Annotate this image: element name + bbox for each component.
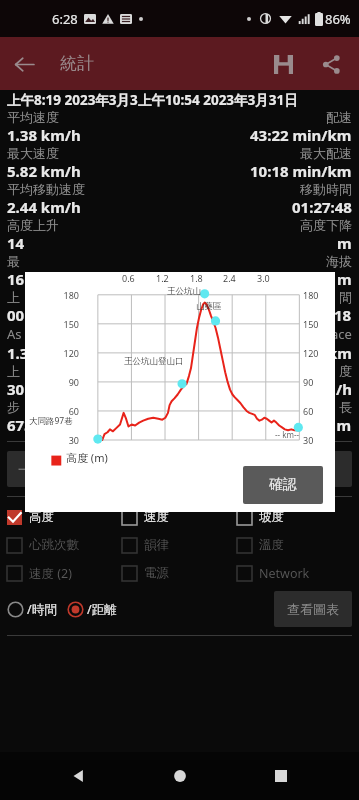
staticText: 間 [339, 289, 352, 305]
button[interactable]: Back [54, 752, 102, 800]
button[interactable]: 速度 (2) [7, 559, 122, 587]
button[interactable]: 查看圖表 [274, 591, 352, 627]
staticText: 步 [7, 399, 20, 415]
button[interactable]: /時間 [7, 594, 57, 624]
staticText: 2.44 km/h [7, 197, 81, 217]
staticText: 心跳次數 [29, 537, 79, 553]
staticText: 6:28 [52, 10, 78, 28]
staticText: 3.0 [257, 272, 270, 284]
staticText: 60 [303, 405, 314, 417]
staticText: 最大速度 [7, 145, 59, 161]
staticText: 43:22 min/km [250, 125, 352, 145]
staticText: 高度上升 [7, 217, 59, 233]
staticText: 電源 [144, 565, 169, 581]
staticText: 速度 (2) [29, 565, 72, 582]
button[interactable]: 電源 [122, 559, 237, 587]
staticText: 00 [7, 305, 25, 325]
staticText: 5.82 km/h [7, 161, 81, 181]
staticText: ace [331, 325, 352, 343]
staticText: 王公坑山 [167, 286, 201, 297]
staticText: 坡度 [259, 509, 284, 525]
staticText: 10:18 min/km [250, 161, 352, 181]
staticText: 韻律 [144, 537, 169, 553]
staticText: 30 [7, 379, 25, 399]
staticText: 移動時間 [300, 181, 352, 197]
button[interactable]: 坡度 [237, 503, 352, 531]
staticText: 最大配速 [300, 145, 352, 161]
staticText: 度 [339, 363, 352, 379]
button[interactable]: 速度 [122, 503, 237, 531]
staticText: 配速 [326, 109, 352, 125]
staticText: 90 [39, 376, 79, 388]
staticText: -- km-- [275, 429, 300, 440]
staticText: 查看圖表 [287, 601, 339, 617]
staticText: 150 [303, 318, 319, 330]
staticText: 1.38 km/h [7, 125, 81, 145]
staticText: 統計 [60, 53, 94, 74]
staticText: 1.2 [156, 272, 169, 284]
staticText: 平均速度 [7, 109, 59, 125]
staticText: 上午10:54 2023年3月31日 [138, 91, 298, 109]
button[interactable]: 確認 [243, 466, 323, 504]
button[interactable]: 心跳次數 [7, 531, 122, 559]
staticText: 確認 [269, 476, 297, 494]
staticText: 最 [7, 253, 20, 269]
staticText: 90 [303, 376, 314, 388]
staticText: 一圈的距離 (1.00 KM) [18, 460, 147, 478]
staticText: 60 [39, 405, 79, 417]
button[interactable]: 詳細 [270, 451, 352, 487]
staticText: 山藥區 [196, 301, 222, 312]
staticText: 0.6 [122, 272, 135, 284]
button[interactable]: Back [0, 40, 48, 88]
staticText: 上 [7, 289, 20, 305]
button[interactable]: Network [237, 559, 352, 587]
staticText: 詳細 [298, 461, 324, 477]
staticText: 2.4 [223, 272, 236, 284]
staticText: /時間 [27, 601, 57, 618]
staticText: 120 [39, 347, 79, 359]
staticText: 86% [325, 10, 351, 28]
staticText: 大同路97巷 [29, 415, 73, 427]
staticText: 30 [39, 434, 79, 446]
staticText: 180 [303, 289, 319, 301]
staticText: 上午8:19 2023年3月3 [7, 91, 138, 109]
staticText: 150 [39, 318, 79, 330]
staticText: 長 [339, 399, 352, 415]
staticText: /距離 [87, 601, 117, 618]
staticText: km [328, 343, 352, 363]
staticText: 高度 (m) [66, 450, 108, 465]
button[interactable]: 一圈的距離 (1.00 KM) [7, 451, 157, 487]
staticText: 溫度 [259, 537, 284, 553]
button[interactable]: Recents [257, 752, 305, 800]
staticText: 16 [7, 269, 25, 289]
staticText: 王公坑山登山口 [124, 356, 184, 367]
staticText: 高度 [29, 509, 54, 525]
button[interactable]: Save [259, 40, 307, 88]
staticText: 1.3 [7, 343, 29, 363]
staticText: 120 [303, 347, 319, 359]
staticText: As [7, 325, 22, 343]
staticText: m [337, 233, 352, 253]
staticText: 30 [303, 434, 314, 446]
staticText: 180 [39, 289, 79, 301]
staticText: m [337, 269, 352, 289]
staticText: Network [259, 565, 310, 582]
button[interactable]: /距離 [67, 594, 117, 624]
staticText: 海拔 [326, 253, 352, 269]
staticText: 0.531 m [294, 415, 352, 435]
staticText: 高度下降 [300, 217, 352, 233]
staticText: 速度 [144, 509, 169, 525]
staticText: 01:27:48 [292, 197, 352, 217]
staticText: 14 [7, 233, 25, 253]
staticText: 6738 [7, 415, 42, 435]
button[interactable]: Home [156, 752, 204, 800]
button[interactable]: 韻律 [122, 531, 237, 559]
staticText: /h [336, 379, 352, 399]
button[interactable]: Share [307, 40, 355, 88]
button[interactable]: 高度 [7, 503, 122, 531]
staticText: 上 [7, 363, 20, 379]
staticText: 平均移動速度 [7, 181, 85, 197]
staticText: 18 [334, 305, 352, 325]
button[interactable]: 溫度 [237, 531, 352, 559]
staticText: 1.8 [190, 272, 203, 284]
